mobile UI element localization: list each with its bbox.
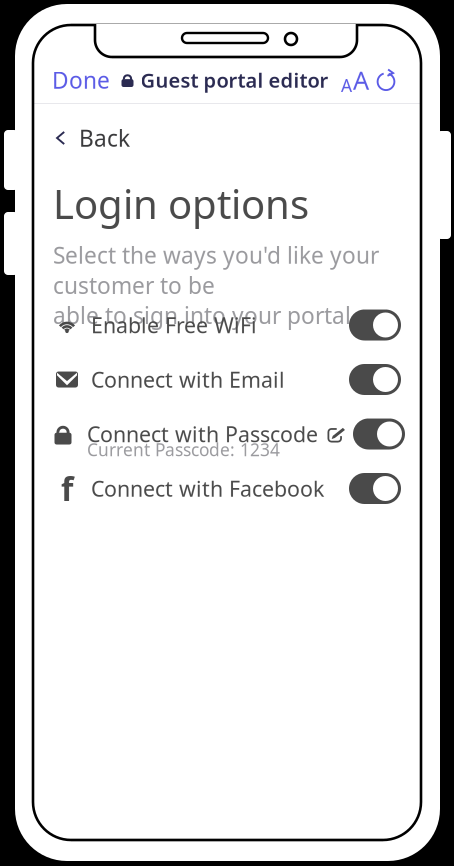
staticText: Current Passcode: 1234 [87,438,280,461]
button[interactable]: Connect with Email [53,352,401,406]
staticText: Back [79,123,130,153]
staticText: Done [52,65,110,95]
button[interactable]: Back [33,119,150,157]
staticText: A [341,74,352,97]
staticText: A [353,63,369,97]
staticText: Guest portal editor [140,67,328,93]
staticText: Enable Free WiFi [91,311,257,339]
button[interactable]: Reload [370,68,402,92]
button[interactable]: Text size [340,68,370,92]
button[interactable]: f [53,461,401,515]
staticText: f [61,467,73,510]
button[interactable]: Connect with Passcode [49,407,405,461]
staticText: Connect with Facebook [91,474,324,503]
staticText: Login options [53,177,309,230]
staticText: Connect with Email [91,365,285,394]
button[interactable]: Enable Free WiFi [53,298,401,352]
staticText: Connect with Passcode [87,420,318,448]
staticText: Select the ways you'd like your customer… [53,240,379,330]
button[interactable]: Done [52,65,110,95]
